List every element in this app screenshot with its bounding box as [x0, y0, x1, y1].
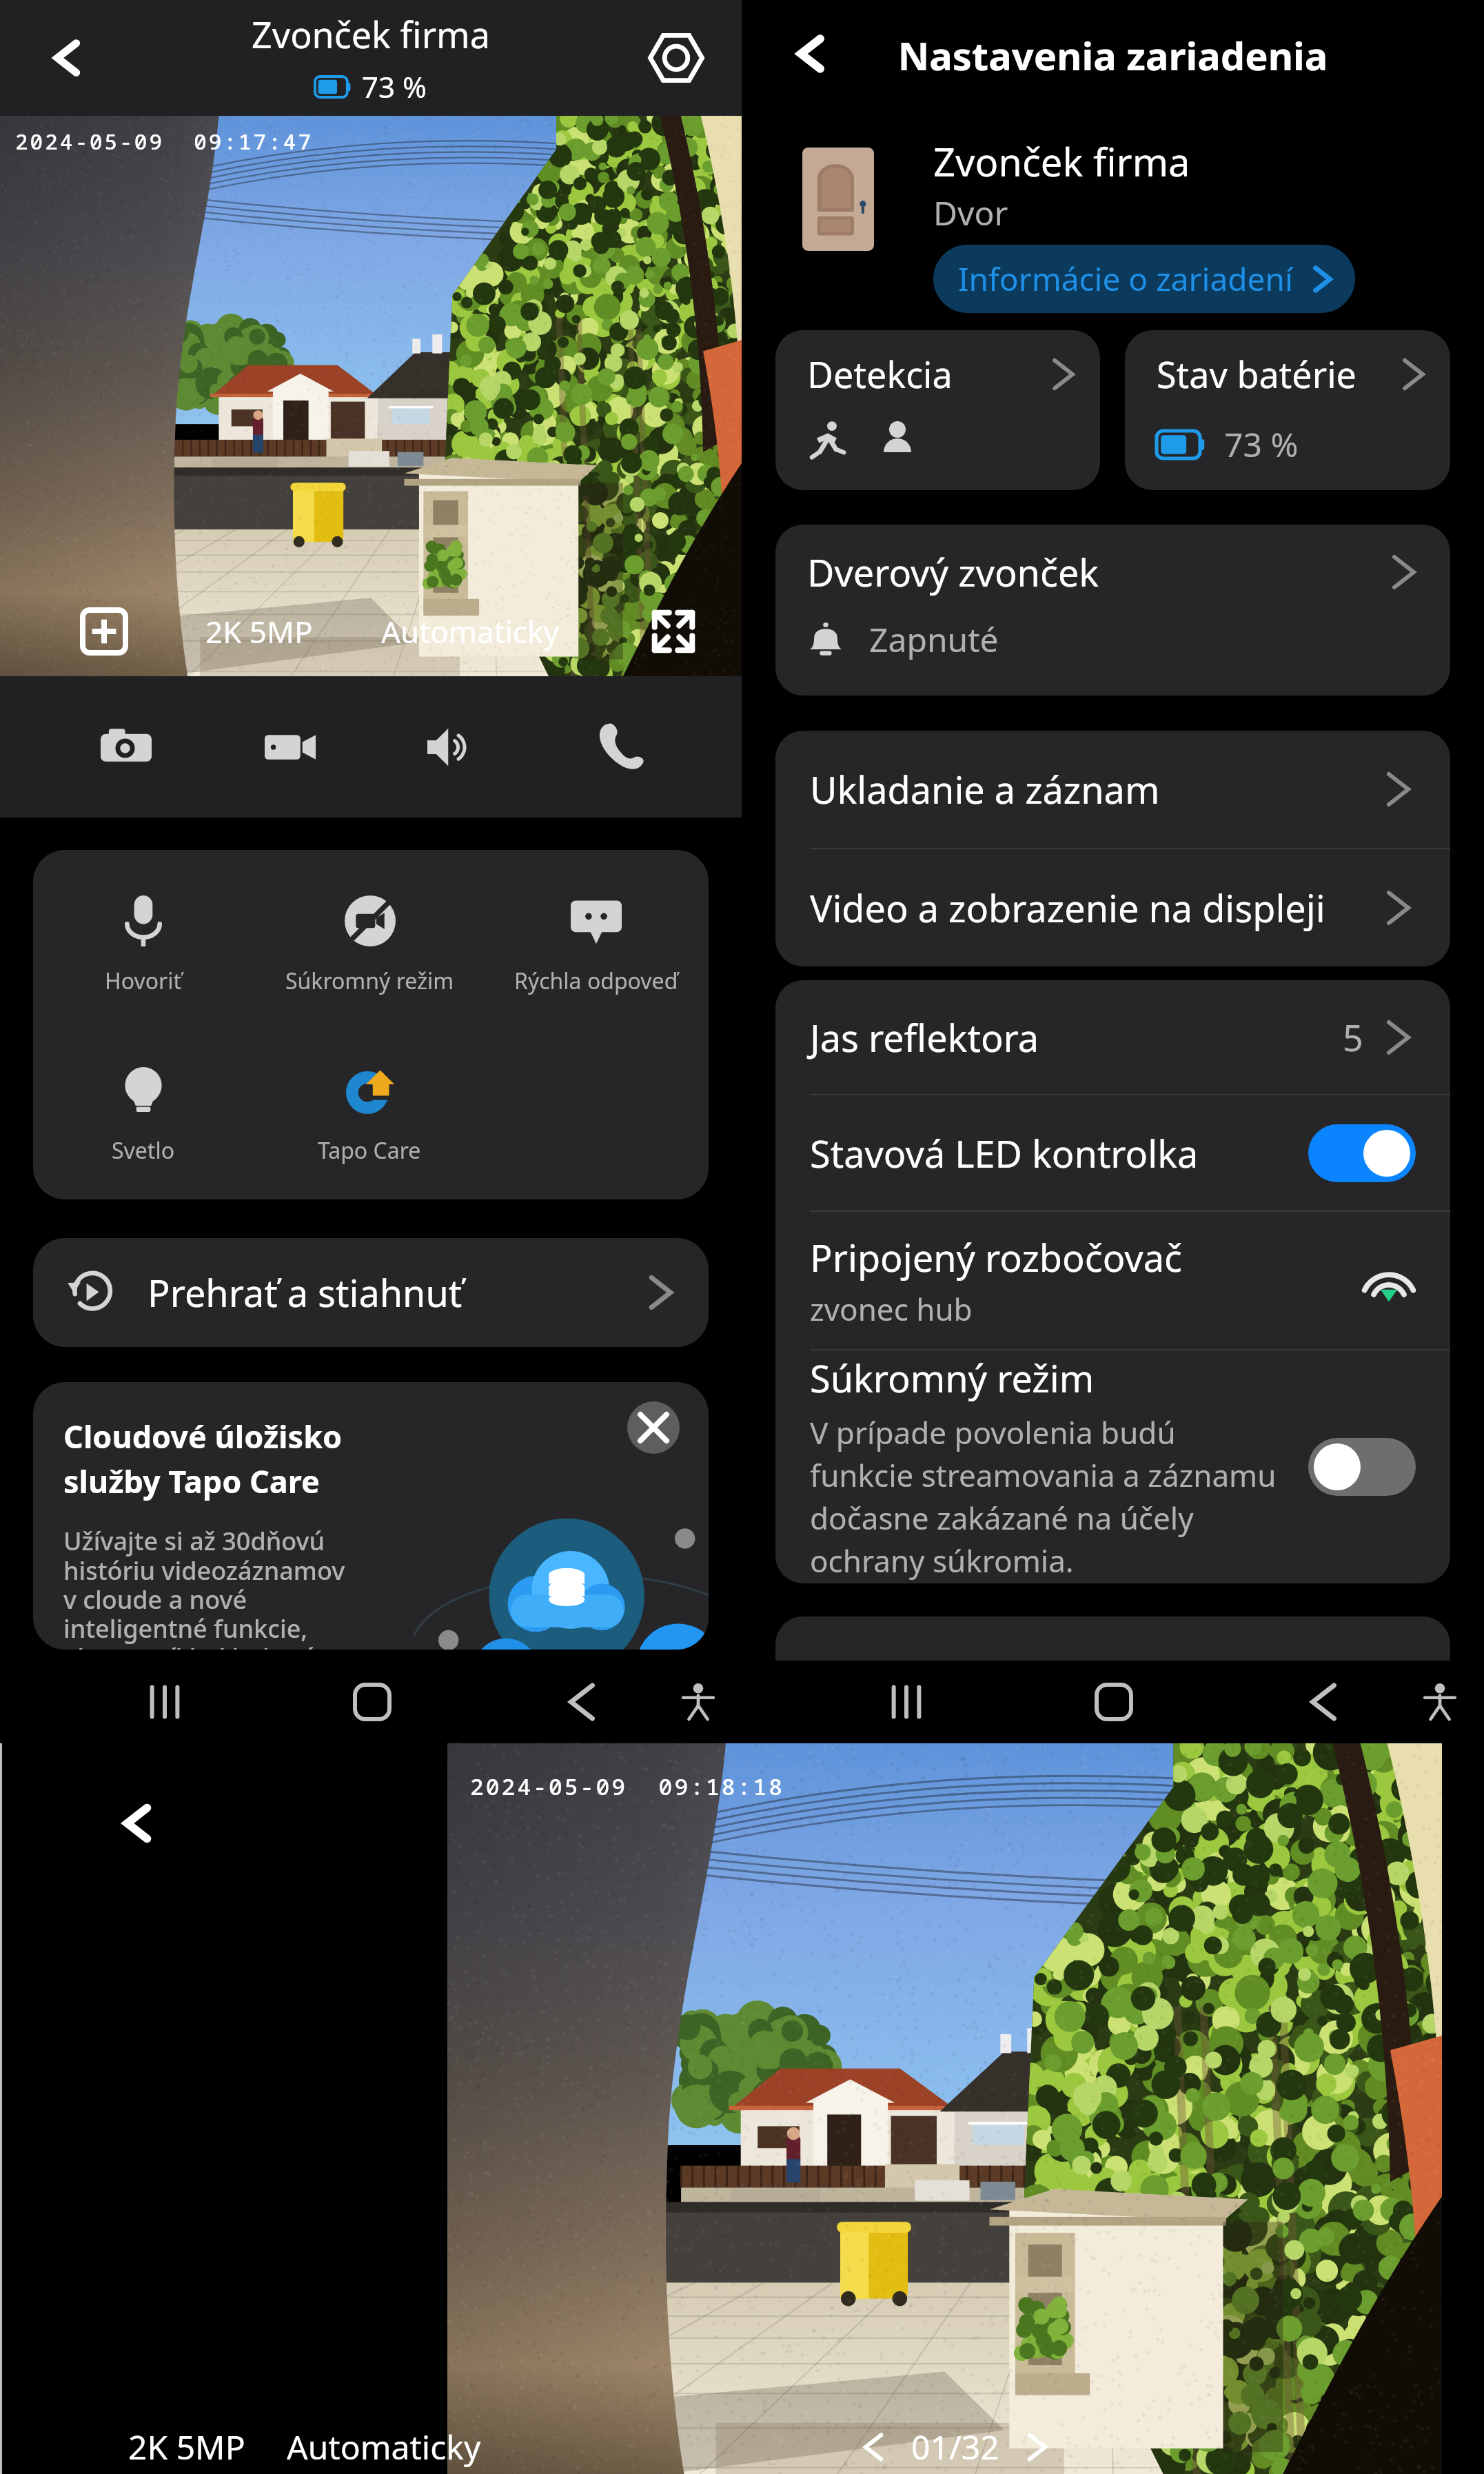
button[interactable]: Back: [769, 12, 852, 95]
button[interactable]: Back: [29, 20, 105, 96]
staticText: 5: [1343, 1013, 1363, 1062]
button[interactable]: 2K 5MP: [123, 2419, 251, 2474]
button[interactable]: Hovoriť: [105, 893, 182, 999]
staticText: 2024-05-09 09:17:47: [15, 127, 313, 156]
other: Back: [782, 25, 840, 83]
button[interactable]: Back: [96, 1782, 179, 1865]
staticText: Pripojený rozbočovač: [810, 1232, 1182, 1283]
button[interactable]: Settings: [638, 20, 714, 96]
button[interactable]: Sound: [414, 709, 490, 785]
staticText: Zvonček firma: [933, 135, 1190, 187]
button[interactable]: Accessibility: [660, 1664, 736, 1740]
button[interactable]: Next: [1024, 2434, 1050, 2460]
button[interactable]: Back: [1285, 1664, 1361, 1740]
button[interactable]: Detekcia: [775, 330, 1100, 490]
button[interactable]: Automaticky: [281, 2419, 487, 2474]
button[interactable]: Tapo Care: [318, 1062, 421, 1168]
button[interactable]: Jas reflektora: [775, 980, 1450, 1094]
staticText: Stavová LED kontrolka: [810, 1128, 1199, 1179]
staticText: Užívajte si až 30dňovú históriu videozáz…: [63, 1524, 345, 1650]
staticText: Video a zobrazenie na displeji: [810, 882, 1325, 933]
staticText: Nastavenia zariadenia: [742, 29, 1484, 81]
button[interactable]: Svetlo: [112, 1062, 175, 1168]
staticText: Zapnuté: [869, 617, 999, 662]
button[interactable]: Automaticky: [376, 605, 565, 658]
staticText: Jas reflektora: [810, 1012, 1039, 1063]
staticText: 2K 5MP: [205, 611, 313, 652]
staticText: Prehrať a stiahnuť: [148, 1267, 463, 1318]
staticText: služby Tapo Care: [63, 1460, 320, 1502]
button[interactable]: Close: [627, 1401, 680, 1454]
button[interactable]: Fullscreen: [647, 605, 700, 658]
staticText: Detekcia: [807, 349, 953, 398]
button[interactable]: Súkromný režim: [775, 1350, 1450, 1583]
staticText: Zvonček firma: [252, 10, 490, 59]
staticText: Dvor: [933, 190, 1008, 235]
button[interactable]: Previous: [860, 2434, 886, 2460]
button[interactable]: Pripojený rozbočovač: [775, 1212, 1450, 1349]
button[interactable]: Accessibility: [1402, 1664, 1478, 1740]
button[interactable]: Recents: [127, 1664, 203, 1740]
button[interactable]: Add: [77, 605, 131, 658]
staticText: Informácie o zariadení: [958, 257, 1293, 301]
button[interactable]: Back: [544, 1664, 620, 1740]
button[interactable]: Stavová LED kontrolka: [775, 1095, 1450, 1210]
staticText: Ukladanie a záznam: [810, 764, 1160, 815]
staticText: V prípade povolenia budú funkcie streamo…: [810, 1412, 1277, 1581]
button[interactable]: Toggle: [1308, 1124, 1416, 1182]
staticText: Cloudové úložisko: [63, 1415, 343, 1457]
staticText: zvonec hub: [810, 1288, 973, 1330]
button[interactable]: Recents: [868, 1664, 944, 1740]
button[interactable]: Record: [252, 709, 328, 785]
button[interactable]: Dverový zvonček: [775, 525, 1450, 696]
staticText: Automaticky: [287, 2424, 481, 2469]
button[interactable]: Snapshot: [88, 709, 164, 785]
other: Back: [108, 1794, 167, 1853]
button[interactable]: Stav batérie: [1125, 330, 1450, 490]
button[interactable]: 2K 5MP: [200, 605, 318, 658]
button[interactable]: Ukladanie a záznam: [775, 731, 1450, 848]
staticText: 2K 5MP: [128, 2424, 245, 2469]
staticText: 73 %: [1224, 422, 1299, 467]
button[interactable]: Informácie o zariadení: [933, 245, 1355, 313]
button[interactable]: Video a zobrazenie na displeji: [775, 849, 1450, 966]
staticText: Rýchla odpoveď: [514, 966, 678, 996]
button[interactable]: Home: [1076, 1664, 1152, 1740]
button[interactable]: Súkromný režim: [285, 893, 454, 999]
other: Back: [39, 30, 95, 86]
staticText: 73 %: [362, 67, 427, 106]
staticText: 2024-05-09 09:18:18: [470, 1771, 784, 1802]
button[interactable]: Call: [582, 709, 658, 785]
staticText: Dverový zvonček: [807, 547, 1099, 598]
button[interactable]: Rýchla odpoveď: [514, 893, 678, 999]
staticText: Svetlo: [112, 1135, 175, 1166]
staticText: Stav batérie: [1157, 349, 1356, 398]
button[interactable]: Home: [334, 1664, 410, 1740]
button[interactable]: Toggle: [1308, 1438, 1416, 1496]
staticText: 01/32: [911, 2424, 999, 2469]
button[interactable]: Prehrať a stiahnuť: [33, 1238, 709, 1347]
staticText: Automaticky: [381, 611, 559, 652]
staticText: Súkromný režim: [285, 966, 454, 996]
staticText: Tapo Care: [318, 1135, 421, 1166]
staticText: Hovoriť: [105, 966, 182, 996]
staticText: Súkromný režim: [810, 1352, 1095, 1403]
